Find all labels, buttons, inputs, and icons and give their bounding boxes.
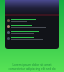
staticText: Lorem ipsum dolor sit amet consectetur a… (4, 63, 60, 70)
button[interactable] (5, 23, 59, 29)
button[interactable] (5, 35, 59, 41)
button[interactable] (5, 29, 59, 35)
button[interactable] (5, 17, 59, 23)
